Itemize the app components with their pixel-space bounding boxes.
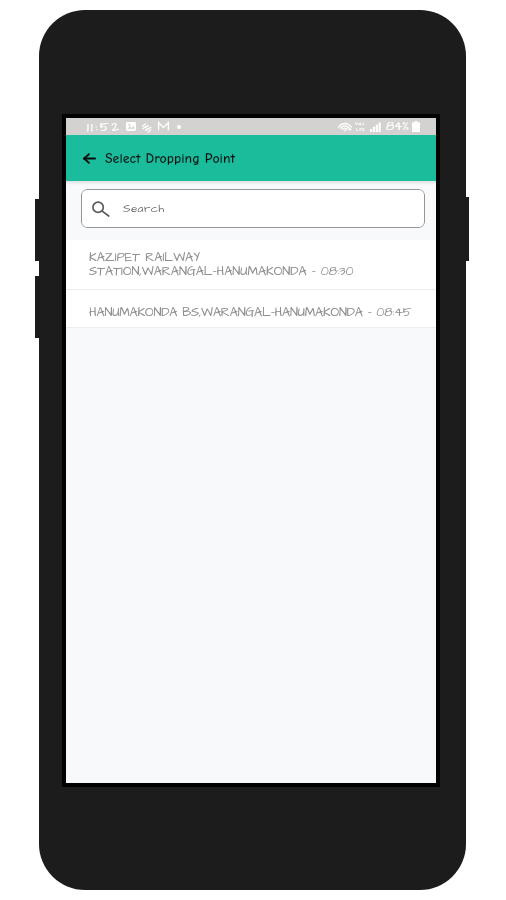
staticText: 84% (386, 118, 410, 135)
button[interactable]: KAZIPET RAILWAY STATION,WARANGAL-HANUMAK… (66, 240, 436, 289)
staticText: KAZIPET RAILWAY STATION,WARANGAL-HANUMAK… (89, 248, 354, 280)
button[interactable]: HANUMAKONDA BS,WARANGAL-HANUMAKONDA - 08… (66, 290, 436, 327)
staticText: Search (123, 201, 165, 217)
staticText: HANUMAKONDA BS,WARANGAL-HANUMAKONDA - 08… (89, 303, 412, 321)
button[interactable]: Search (81, 189, 425, 228)
staticText: Select Dropping Point (105, 150, 236, 166)
button[interactable]: Back (83, 146, 96, 170)
staticText: 11:52 (87, 118, 122, 135)
staticText: LTE (356, 127, 365, 133)
staticText: VoLI (355, 121, 365, 127)
